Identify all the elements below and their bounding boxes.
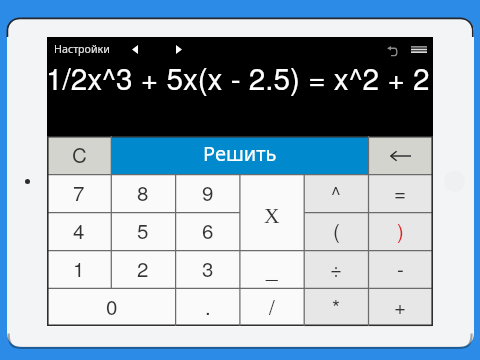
button[interactable]: Backspace xyxy=(368,137,432,175)
button[interactable]: Решить xyxy=(111,137,368,175)
button[interactable]: Undo xyxy=(385,43,400,59)
button[interactable]: 2 xyxy=(111,251,175,289)
staticText: = xyxy=(394,177,407,206)
staticText: 1 xyxy=(73,253,85,282)
staticText: 3 xyxy=(202,253,214,282)
button[interactable]: 4 xyxy=(47,213,111,251)
button[interactable]: - xyxy=(368,251,432,289)
staticText: 4 xyxy=(73,215,85,244)
button[interactable]: Menu xyxy=(409,41,429,57)
button[interactable]: ( xyxy=(304,213,368,251)
button[interactable]: Next xyxy=(170,40,188,58)
button[interactable]: + xyxy=(368,289,432,327)
button[interactable]: 0 xyxy=(47,289,176,327)
staticText: Решить xyxy=(203,140,277,167)
button[interactable]: ÷ xyxy=(304,251,368,289)
staticText: . xyxy=(205,291,211,320)
staticText: 9 xyxy=(202,177,214,206)
button[interactable]: 8 xyxy=(111,175,175,213)
button[interactable]: ) xyxy=(368,213,432,251)
button[interactable]: ^ xyxy=(304,175,368,213)
button[interactable]: Настройки xyxy=(47,39,115,60)
staticText: - xyxy=(397,253,404,282)
button[interactable]: 1 xyxy=(47,251,111,289)
button[interactable]: _ xyxy=(240,251,304,289)
button[interactable]: Previous xyxy=(126,40,144,58)
staticText: 6 xyxy=(202,215,214,244)
staticText: Настройки xyxy=(54,42,110,57)
staticText: 1/2x^3 + 5x(x - 2.5) = x^2 + 2 xyxy=(46,56,430,99)
staticText: 5 xyxy=(137,215,149,244)
button[interactable]: X xyxy=(240,175,304,251)
button[interactable]: = xyxy=(368,175,432,213)
button[interactable]: / xyxy=(240,289,304,327)
button[interactable]: C xyxy=(47,137,111,175)
staticText: 7 xyxy=(73,177,85,206)
staticText: ( xyxy=(333,215,340,244)
button[interactable]: 3 xyxy=(176,251,240,289)
button[interactable]: 7 xyxy=(47,175,111,213)
staticText: 8 xyxy=(137,177,149,206)
staticText: 2 xyxy=(137,253,149,282)
staticText: / xyxy=(269,291,275,320)
button[interactable]: 5 xyxy=(111,213,175,251)
staticText: C xyxy=(72,139,87,168)
staticText: _ xyxy=(266,253,278,282)
button[interactable]: * xyxy=(304,289,368,327)
staticText: + xyxy=(394,291,407,320)
staticText: 0 xyxy=(106,291,118,320)
button[interactable]: . xyxy=(176,289,240,327)
button[interactable]: 6 xyxy=(176,213,240,251)
staticText: X xyxy=(264,204,280,228)
button[interactable]: 9 xyxy=(176,175,240,213)
staticText: ^ xyxy=(331,177,341,206)
staticText: * xyxy=(332,291,341,320)
staticText: ) xyxy=(397,215,404,244)
staticText: ÷ xyxy=(330,253,343,282)
